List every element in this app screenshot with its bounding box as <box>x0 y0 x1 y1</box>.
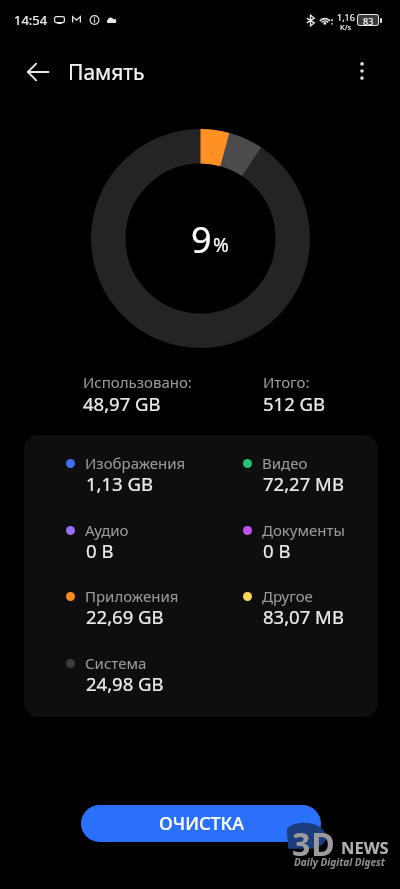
staticText: Итого: <box>263 372 310 392</box>
staticText: 48,97 GB <box>83 391 161 416</box>
staticText: 22,69 GB <box>86 604 164 629</box>
button[interactable]: More options <box>340 49 384 93</box>
staticText: Daily Digital Digest <box>294 855 385 869</box>
staticText: 24,98 GB <box>86 671 164 696</box>
staticText: % <box>213 232 229 258</box>
staticText: NEWS <box>341 836 389 858</box>
staticText: Документы <box>262 520 345 540</box>
staticText: 72,27 MB <box>263 471 344 496</box>
staticText: ОЧИСТКА <box>159 811 244 836</box>
button[interactable]: Изображения <box>24 435 378 717</box>
staticText: 83 <box>363 15 374 25</box>
staticText: 0 B <box>263 538 291 563</box>
staticText: K/s <box>340 22 352 32</box>
staticText: 0 B <box>86 538 114 563</box>
staticText: 1,16 <box>337 11 355 23</box>
staticText: 3D <box>292 822 336 866</box>
staticText: Другое <box>262 586 313 606</box>
staticText: Изображения <box>85 453 186 473</box>
staticText: Использовано: <box>83 372 192 392</box>
staticText: 83,07 MB <box>263 604 344 629</box>
button[interactable]: ОЧИСТКА <box>81 805 321 842</box>
staticText: Аудио <box>85 520 129 540</box>
staticText: 1,13 GB <box>86 471 154 496</box>
staticText: 9 <box>191 215 212 264</box>
button[interactable]: Back <box>15 49 61 95</box>
staticText: Память <box>68 58 145 87</box>
staticText: Приложения <box>85 586 179 606</box>
staticText: Видео <box>262 453 308 473</box>
staticText: Система <box>85 653 147 673</box>
staticText: 512 GB <box>263 391 326 416</box>
staticText: 14:54 <box>14 11 48 29</box>
